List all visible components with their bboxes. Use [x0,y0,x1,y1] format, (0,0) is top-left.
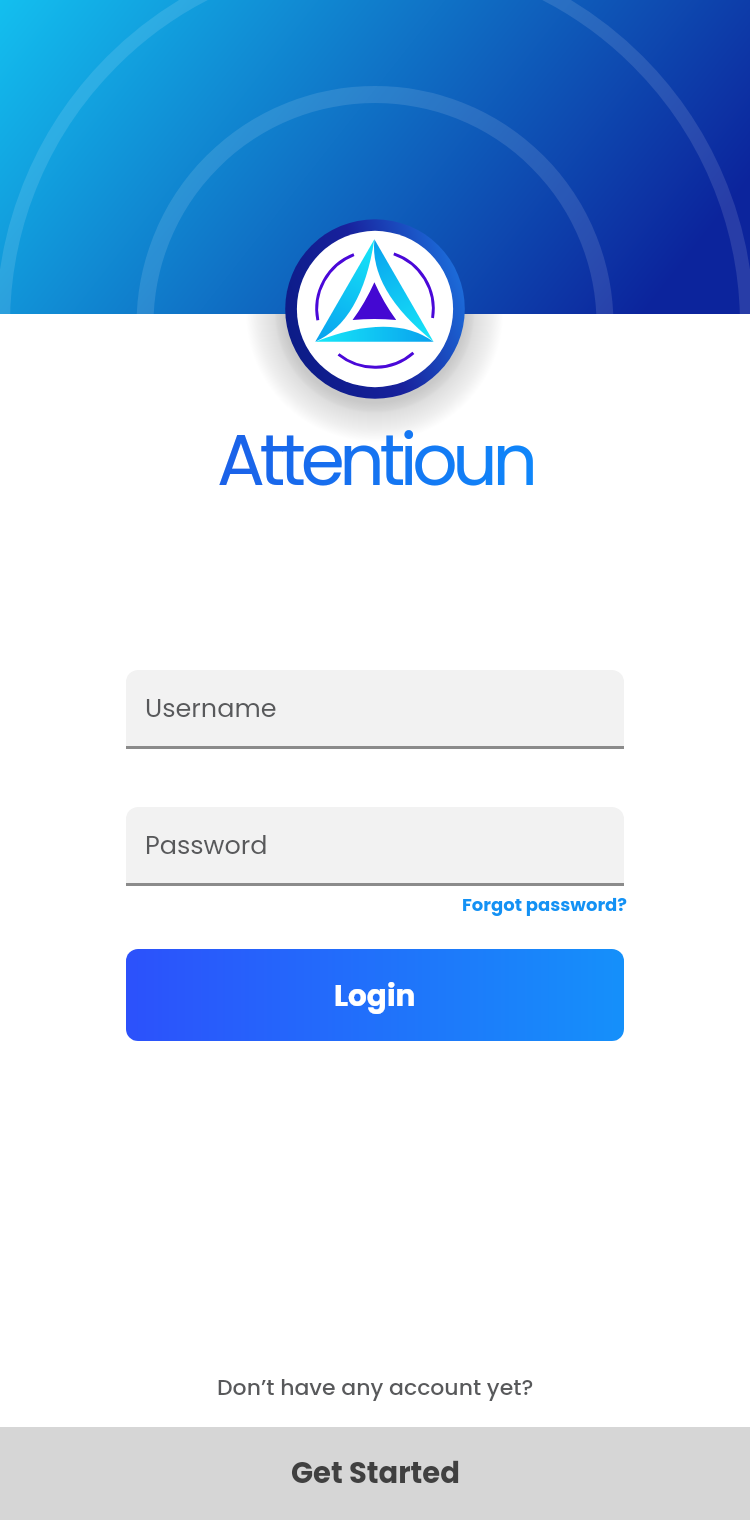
button[interactable]: Forgot password? [462,889,628,920]
button[interactable]: Password [126,807,624,883]
button[interactable]: Get Started [0,1427,750,1520]
button[interactable]: Username [126,670,624,746]
button[interactable]: Login [126,949,624,1041]
staticText: Attentioun [217,410,533,509]
staticText: Forgot password? [462,892,628,917]
staticText: Login [334,975,416,1016]
staticText: Password [145,827,268,863]
staticText: Don’t have any account yet? [217,1372,534,1403]
staticText: Get Started [291,1453,460,1494]
staticText: Username [145,690,277,726]
